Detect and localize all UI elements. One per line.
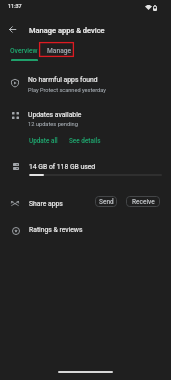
button[interactable]: No harmful apps found — [0, 70, 171, 98]
button[interactable]: Overview — [3, 42, 44, 59]
staticText: 14 GB of 118 GB used — [29, 163, 96, 171]
staticText: Send — [99, 198, 114, 206]
staticText: No harmful apps found — [28, 76, 98, 84]
button[interactable]: Ratings & reviews — [0, 220, 171, 242]
button[interactable]: Update all — [26, 136, 61, 146]
button[interactable]: Send — [95, 196, 117, 207]
button[interactable]: 14 GB of 118 GB used — [0, 158, 171, 182]
staticText: 12 updates pending — [28, 121, 78, 128]
staticText: Manage — [47, 47, 72, 55]
button[interactable]: Back — [4, 21, 21, 38]
staticText: Play Protect scanned yesterday — [28, 87, 106, 94]
staticText: Receive — [132, 198, 155, 206]
staticText: See details — [69, 137, 101, 145]
staticText: 11:37 — [8, 3, 22, 9]
button[interactable]: Manage — [40, 42, 79, 59]
button[interactable]: See details — [66, 136, 104, 146]
button[interactable]: Receive — [126, 196, 160, 207]
button[interactable]: Updates available — [0, 102, 171, 147]
staticText: Ratings & reviews — [29, 226, 83, 234]
staticText: Overview — [10, 47, 38, 55]
staticText: Updates available — [28, 111, 82, 119]
staticText: Update all — [29, 137, 58, 145]
staticText: Share apps — [29, 200, 63, 208]
button[interactable]: Share apps — [0, 192, 171, 214]
staticText: Manage apps & device — [29, 26, 105, 35]
